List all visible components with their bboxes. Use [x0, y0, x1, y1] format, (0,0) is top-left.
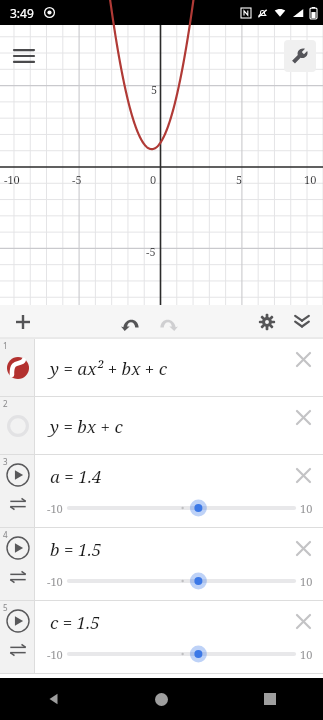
button[interactable]: Delete expression: [289, 534, 317, 562]
staticText: b = 1.5: [50, 538, 102, 561]
staticText: -5: [146, 244, 156, 259]
staticText: 5: [3, 602, 8, 613]
staticText: -10: [47, 647, 63, 662]
button[interactable]: Slider a: [69, 498, 294, 518]
staticText: 5: [236, 172, 243, 187]
staticText: y = ax² + bx + c: [50, 357, 168, 380]
button[interactable]: Step direction: [7, 566, 29, 588]
button[interactable]: Slider c: [69, 644, 294, 664]
button[interactable]: 2: [0, 397, 323, 455]
staticText: 3: [3, 456, 8, 467]
button[interactable]: 4: [0, 528, 323, 601]
staticText: 4: [3, 529, 8, 540]
button[interactable]: Back: [0, 678, 107, 720]
staticText: 1: [3, 340, 8, 351]
button[interactable]: Play c: [6, 609, 30, 633]
button[interactable]: Recent apps: [216, 678, 323, 720]
staticText: -10: [4, 172, 20, 187]
staticText: 2: [3, 398, 8, 409]
button[interactable]: Delete expression: [289, 461, 317, 489]
staticText: 0: [150, 172, 157, 187]
button[interactable]: Menu: [8, 40, 40, 72]
staticText: 5: [151, 82, 158, 97]
button[interactable]: Step direction: [7, 639, 29, 661]
button[interactable]: 1: [0, 339, 323, 397]
staticText: 10: [304, 172, 317, 187]
staticText: y = bx + c: [50, 415, 123, 438]
button[interactable]: Slider b: [69, 571, 294, 591]
button[interactable]: Step direction: [7, 493, 29, 515]
button[interactable]: Tools: [284, 40, 316, 72]
button[interactable]: Undo: [116, 308, 144, 336]
button[interactable]: Add expression: [8, 307, 38, 337]
button[interactable]: Settings: [253, 308, 281, 336]
staticText: 10: [300, 501, 313, 516]
button[interactable]: Collapse: [287, 307, 317, 337]
staticText: c = 1.5: [50, 611, 100, 634]
button[interactable]: Home: [108, 678, 215, 720]
staticText: 10: [300, 574, 313, 589]
staticText: 10: [300, 647, 313, 662]
staticText: -5: [72, 172, 82, 187]
staticText: -10: [47, 574, 63, 589]
button[interactable]: Delete expression: [289, 607, 317, 635]
button[interactable]: Delete expression: [289, 345, 317, 373]
staticText: a = 1.4: [50, 465, 102, 488]
staticText: 3:49: [10, 5, 34, 21]
button[interactable]: 5: [0, 601, 323, 674]
button[interactable]: Delete expression: [289, 403, 317, 431]
button[interactable]: Play b: [6, 536, 30, 560]
button[interactable]: Redo: [154, 308, 182, 336]
button[interactable]: 3: [0, 455, 323, 528]
button[interactable]: Play a: [6, 463, 30, 487]
staticText: -10: [47, 501, 63, 516]
